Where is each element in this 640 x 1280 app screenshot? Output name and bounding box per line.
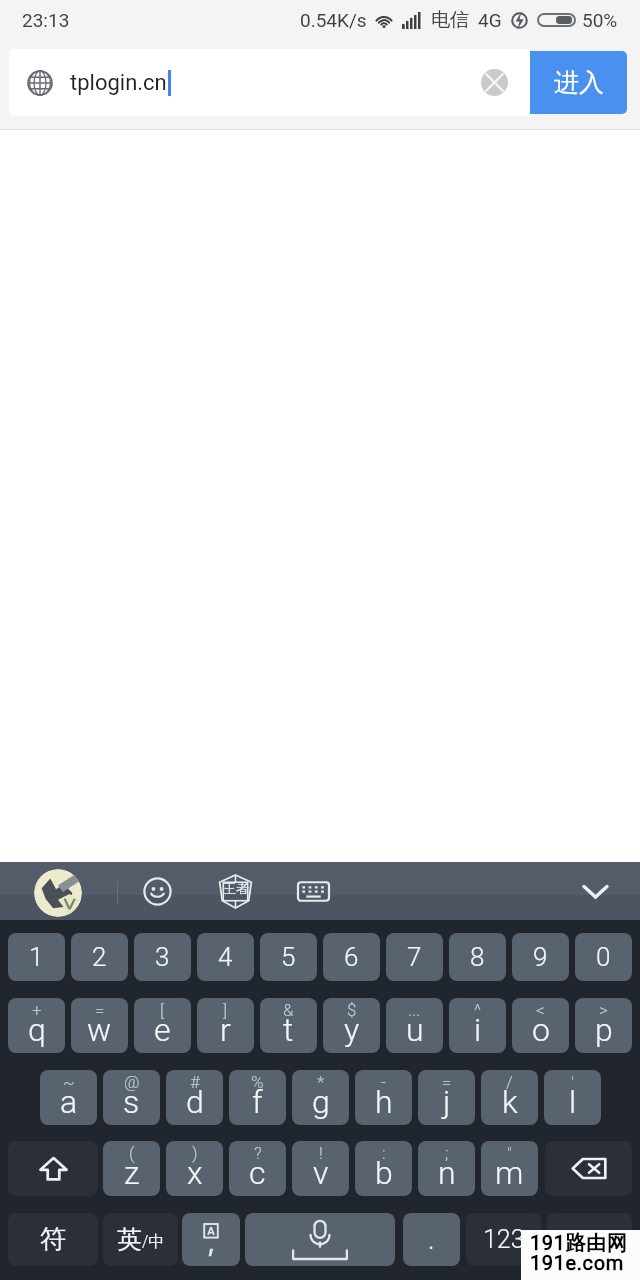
button[interactable]: 5 xyxy=(260,933,317,981)
staticText: = xyxy=(95,1000,105,1020)
button[interactable]: " xyxy=(481,1141,538,1196)
staticText: j xyxy=(443,1083,451,1121)
staticText: ] xyxy=(223,1000,228,1020)
button[interactable]: : xyxy=(355,1141,412,1196)
button[interactable]: $ xyxy=(323,998,380,1053)
staticText: " xyxy=(507,1143,512,1163)
staticText: < xyxy=(536,1000,545,1020)
staticText: g xyxy=(312,1083,330,1121)
button[interactable]: ! xyxy=(292,1141,349,1196)
button[interactable]: Account avatar xyxy=(34,869,82,917)
button[interactable]: = xyxy=(71,998,128,1053)
button[interactable]: / xyxy=(481,1070,538,1125)
button[interactable]: ? xyxy=(229,1141,286,1196)
button[interactable]: 进入 xyxy=(530,51,627,114)
staticText: & xyxy=(283,1000,294,1020)
button[interactable]: 1 xyxy=(8,933,65,981)
button[interactable]: & xyxy=(260,998,317,1053)
button[interactable]: ' xyxy=(544,1070,601,1125)
staticText: c xyxy=(249,1154,266,1192)
button[interactable]: Enter xyxy=(547,1213,632,1266)
button[interactable]: # xyxy=(166,1070,223,1125)
button[interactable]: 123 xyxy=(466,1213,541,1266)
staticText: h xyxy=(375,1083,393,1121)
staticText: = xyxy=(442,1072,452,1092)
button[interactable]: ~ xyxy=(40,1070,97,1125)
button[interactable]: [ xyxy=(134,998,191,1053)
staticText: 6 xyxy=(344,942,359,972)
staticText: x xyxy=(187,1154,203,1192)
button[interactable]: ( xyxy=(103,1141,160,1196)
button[interactable]: 0 xyxy=(575,933,632,981)
staticText: ... xyxy=(408,1000,421,1020)
staticText: m xyxy=(495,1154,524,1192)
button[interactable]: Shift xyxy=(8,1141,98,1196)
staticText: o xyxy=(532,1011,550,1049)
staticText: s xyxy=(123,1083,140,1121)
button[interactable]: 3 xyxy=(134,933,191,981)
staticText: @ xyxy=(124,1072,140,1092)
staticText: ; xyxy=(445,1143,449,1163)
button[interactable]: Keyboard layout xyxy=(291,869,336,914)
staticText: z xyxy=(124,1154,140,1192)
button[interactable]: 符 xyxy=(8,1213,98,1266)
staticText: 23:13 xyxy=(22,9,70,31)
staticText: 3 xyxy=(155,942,170,972)
button[interactable]: Backspace xyxy=(545,1141,632,1196)
button[interactable]: ... xyxy=(386,998,443,1053)
staticText: 5 xyxy=(281,942,296,972)
button[interactable]: * xyxy=(292,1070,349,1125)
button[interactable]: > xyxy=(575,998,632,1053)
staticText: - xyxy=(381,1072,386,1092)
button[interactable]: Emoji xyxy=(137,871,178,912)
staticText: 9 xyxy=(533,942,548,972)
button[interactable]: 8 xyxy=(449,933,506,981)
button[interactable]: - xyxy=(355,1070,412,1125)
staticText: a xyxy=(60,1083,78,1121)
staticText: k xyxy=(502,1083,518,1121)
staticText: : xyxy=(382,1143,386,1163)
staticText: % xyxy=(251,1072,264,1092)
button[interactable]: ] xyxy=(197,998,254,1053)
button[interactable]: Switch language xyxy=(182,1213,240,1266)
staticText: . xyxy=(428,1224,435,1256)
staticText: i xyxy=(474,1011,482,1049)
button[interactable]: 7 xyxy=(386,933,443,981)
staticText: 7 xyxy=(407,942,422,972)
button[interactable]: ^ xyxy=(449,998,506,1053)
button[interactable]: tplogin.cn xyxy=(9,49,530,116)
staticText: b xyxy=(375,1154,393,1192)
staticText: u xyxy=(406,1011,424,1049)
button[interactable]: ) xyxy=(166,1141,223,1196)
button[interactable]: 4 xyxy=(197,933,254,981)
staticText: q xyxy=(28,1011,46,1049)
button[interactable]: < xyxy=(512,998,569,1053)
button[interactable]: Clear text xyxy=(481,69,508,96)
staticText: 0.54K/s xyxy=(300,9,367,31)
staticText: e xyxy=(154,1011,171,1049)
staticText: > xyxy=(599,1000,608,1020)
staticText: 进入 xyxy=(554,67,604,98)
button[interactable]: @ xyxy=(103,1070,160,1125)
staticText: 50% xyxy=(582,9,618,31)
button[interactable]: ; xyxy=(418,1141,475,1196)
staticText: y xyxy=(344,1011,360,1049)
button[interactable]: 6 xyxy=(323,933,380,981)
staticText: ) xyxy=(192,1143,198,1163)
button[interactable]: = xyxy=(418,1070,475,1125)
staticText: ~ xyxy=(63,1072,75,1092)
staticText: 191路由网 xyxy=(530,1231,628,1256)
button[interactable]: + xyxy=(8,998,65,1053)
button[interactable]: 英 xyxy=(103,1213,178,1266)
button[interactable]: Hide keyboard xyxy=(577,873,614,910)
staticText: 4 xyxy=(218,942,233,972)
button[interactable]: Voice input, space xyxy=(245,1213,395,1266)
button[interactable]: 2 xyxy=(71,933,128,981)
button[interactable]: Game theme xyxy=(213,869,258,914)
button[interactable]: 9 xyxy=(512,933,569,981)
staticText: 0 xyxy=(596,942,611,972)
staticText: /中 xyxy=(142,1232,165,1252)
staticText: ' xyxy=(571,1072,574,1092)
button[interactable]: . xyxy=(403,1213,460,1266)
button[interactable]: % xyxy=(229,1070,286,1125)
